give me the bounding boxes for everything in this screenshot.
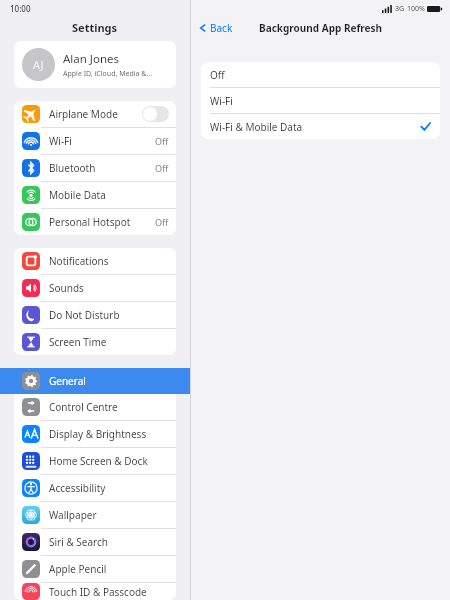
staticText: Off xyxy=(155,216,169,228)
staticText: Apple ID, iCloud, Media &… xyxy=(63,69,152,79)
button[interactable]: Airplane Mode toggle, off xyxy=(142,106,169,122)
staticText: Off xyxy=(155,162,169,174)
staticText: Off xyxy=(210,68,431,82)
staticText: Wi-Fi xyxy=(49,134,155,148)
staticText: Apple Pencil xyxy=(49,562,169,576)
staticText: Do Not Disturb xyxy=(49,308,169,322)
staticText: Home Screen & Dock xyxy=(49,454,169,468)
button[interactable]: Off xyxy=(201,62,440,87)
staticText: General xyxy=(49,374,86,388)
staticText: Notifications xyxy=(49,254,169,268)
staticText: Touch ID & Passcode xyxy=(49,585,169,599)
button[interactable]: Back xyxy=(197,19,235,37)
staticText: Wi-Fi xyxy=(210,94,431,108)
staticText: Accessibility xyxy=(49,481,169,495)
staticText: Siri & Search xyxy=(49,535,169,549)
button[interactable]: AJ xyxy=(14,41,176,88)
button[interactable]: Wallpaper xyxy=(14,502,176,528)
staticText: Alan Jones xyxy=(63,51,120,67)
button[interactable]: General xyxy=(0,368,190,394)
button[interactable]: Personal Hotspot xyxy=(14,209,176,235)
button[interactable]: Control Centre xyxy=(14,394,176,420)
staticText: Personal Hotspot xyxy=(49,215,155,229)
staticText: Screen Time xyxy=(49,335,169,349)
staticText: Back xyxy=(210,21,233,35)
staticText: 3G xyxy=(395,4,405,14)
button[interactable]: Bluetooth xyxy=(14,155,176,181)
button[interactable]: Home Screen & Dock xyxy=(14,448,176,474)
button[interactable]: Do Not Disturb xyxy=(14,302,176,328)
button[interactable]: Accessibility xyxy=(14,475,176,501)
staticText: Settings xyxy=(72,20,118,35)
staticText: Bluetooth xyxy=(49,161,155,175)
button[interactable]: Wi-Fi & Mobile Data xyxy=(201,114,440,139)
staticText: Sounds xyxy=(49,281,169,295)
staticText: Display & Brightness xyxy=(49,427,169,441)
button[interactable]: Display & Brightness xyxy=(14,421,176,447)
staticText: Control Centre xyxy=(49,400,169,414)
button[interactable]: Siri & Search xyxy=(14,529,176,555)
staticText: 100% xyxy=(407,4,425,14)
staticText: Wallpaper xyxy=(49,508,169,522)
button[interactable]: Screen Time xyxy=(14,329,176,355)
staticText: Mobile Data xyxy=(49,188,169,202)
button[interactable]: Wi-Fi xyxy=(201,88,440,113)
staticText: Airplane Mode xyxy=(49,107,142,121)
staticText: Off xyxy=(155,135,169,147)
staticText: Wi-Fi & Mobile Data xyxy=(210,120,420,134)
button[interactable]: Touch ID & Passcode xyxy=(14,583,176,600)
button[interactable]: Sounds xyxy=(14,275,176,301)
button[interactable]: Apple Pencil xyxy=(14,556,176,582)
staticText: AJ xyxy=(33,57,44,72)
button[interactable]: Wi-Fi xyxy=(14,128,176,154)
button[interactable]: Notifications xyxy=(14,248,176,274)
staticText: 10:00 xyxy=(10,3,31,14)
staticText: Background App Refresh xyxy=(259,21,383,35)
button[interactable]: Airplane Mode xyxy=(14,101,176,127)
button[interactable]: Mobile Data xyxy=(14,182,176,208)
